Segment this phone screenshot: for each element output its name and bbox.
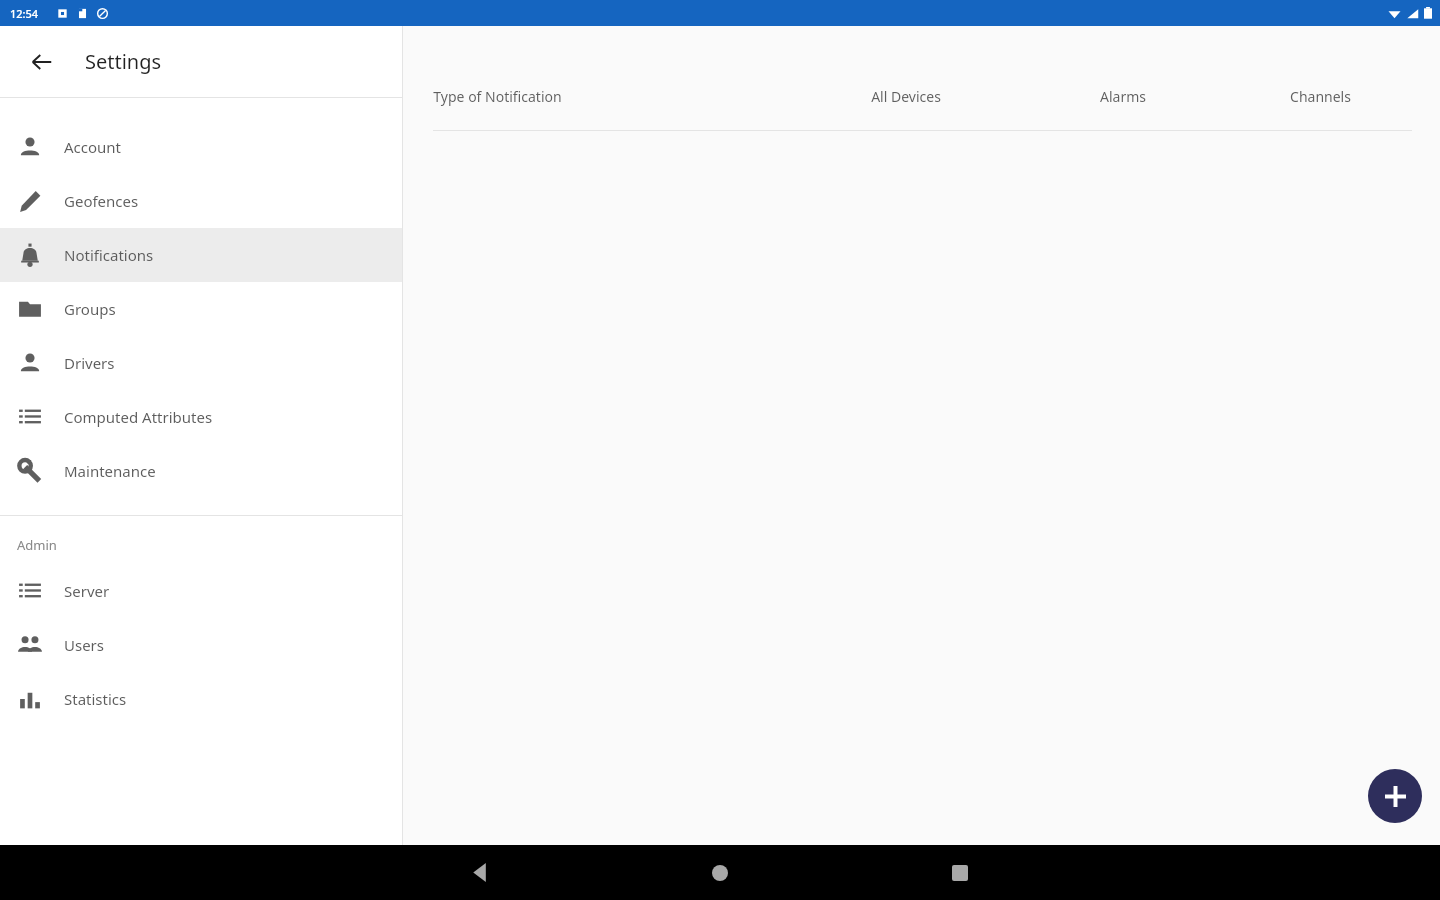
staticText: Drivers — [64, 353, 115, 373]
staticText: Alarms — [1100, 87, 1146, 106]
staticText: Account — [64, 137, 122, 157]
button[interactable]: Back — [360, 845, 600, 900]
button[interactable]: Account — [0, 120, 402, 174]
button[interactable]: Recents — [840, 845, 1080, 900]
button[interactable]: Groups — [0, 282, 402, 336]
staticText: Users — [64, 635, 104, 655]
button[interactable]: Notifications — [0, 228, 402, 282]
button[interactable]: Add notification — [1368, 769, 1422, 823]
button[interactable]: Computed Attributes — [0, 390, 402, 444]
button[interactable]: Statistics — [0, 672, 402, 726]
staticText: Statistics — [64, 689, 127, 709]
staticText: Maintenance — [64, 461, 156, 481]
staticText: All Devices — [871, 87, 941, 106]
staticText: Type of Notification — [433, 87, 562, 106]
staticText: Settings — [85, 48, 162, 75]
button[interactable]: Users — [0, 618, 402, 672]
staticText: Geofences — [64, 191, 139, 211]
button[interactable]: Home — [600, 845, 840, 900]
staticText: Admin — [17, 536, 57, 554]
button[interactable]: Drivers — [0, 336, 402, 390]
staticText: 12:54 — [10, 6, 39, 21]
button[interactable]: Maintenance — [0, 444, 402, 498]
staticText: Notifications — [64, 245, 154, 265]
staticText: Groups — [64, 299, 116, 319]
button[interactable]: Server — [0, 564, 402, 618]
staticText: Computed Attributes — [64, 407, 213, 427]
staticText: Channels — [1290, 87, 1351, 106]
staticText: Server — [64, 581, 110, 601]
button[interactable]: Back — [22, 42, 62, 82]
button[interactable]: Geofences — [0, 174, 402, 228]
